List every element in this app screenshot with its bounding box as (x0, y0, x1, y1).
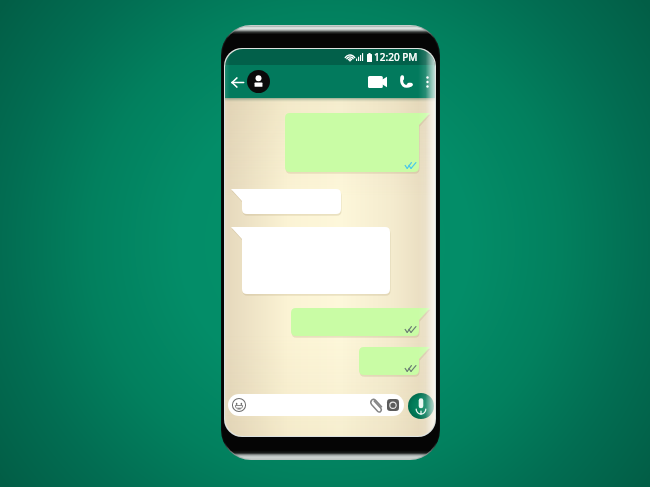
button[interactable] (291, 308, 430, 336)
button[interactable] (231, 189, 341, 214)
button[interactable]: Video call (365, 68, 390, 95)
button[interactable]: Type a message (228, 394, 404, 416)
button[interactable]: Call (393, 68, 418, 95)
staticText: 12:20 PM (374, 50, 418, 64)
button[interactable] (231, 227, 390, 294)
button[interactable] (285, 113, 430, 172)
button[interactable]: Back (228, 70, 246, 94)
button[interactable]: Record voice message (408, 393, 434, 419)
button[interactable]: More options (419, 69, 435, 95)
button[interactable]: Contact profile (247, 70, 270, 93)
button[interactable] (359, 347, 430, 375)
